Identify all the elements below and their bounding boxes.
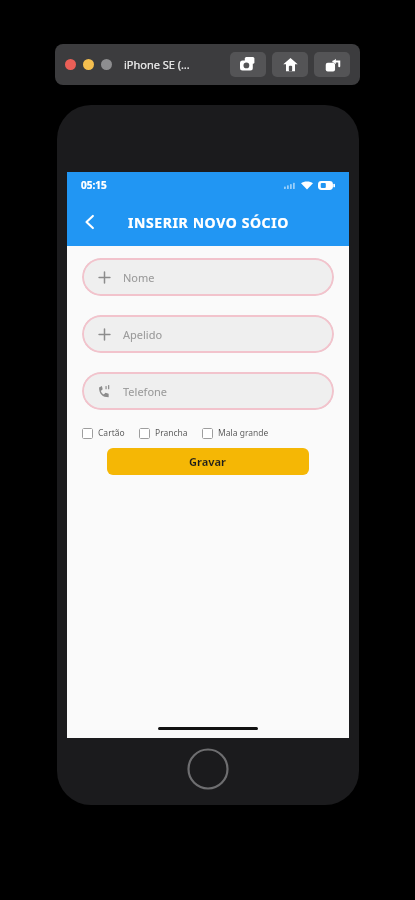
staticText: iPhone SE (… [124,57,190,72]
staticText: Nome [123,270,155,285]
button[interactable]: Close [65,59,76,70]
staticText: Cartão [98,427,125,439]
button[interactable]: Screenshot [230,52,266,77]
staticText: Apelido [123,327,163,342]
button[interactable]: Nome [82,258,334,296]
button[interactable]: Apelido [82,315,334,353]
button[interactable]: Back [67,198,113,246]
button[interactable]: Prancha [139,427,188,439]
button[interactable]: Rotate [314,52,350,77]
button[interactable]: Home [272,52,308,77]
button[interactable]: Gravar [107,448,309,475]
button[interactable]: Minimize [83,59,94,70]
staticText: 05:15 [81,178,107,192]
staticText: Mala grande [218,427,269,439]
button[interactable]: Cartão [82,427,125,439]
staticText: Prancha [155,427,188,439]
staticText: Gravar [189,454,227,469]
staticText: Telefone [123,384,168,399]
button[interactable]: Zoom [101,59,112,70]
staticText: INSERIR NOVO SÓCIO [128,213,289,232]
other: Home button [187,748,229,790]
button[interactable]: Mala grande [202,427,269,439]
button[interactable]: Telefone [82,372,334,410]
